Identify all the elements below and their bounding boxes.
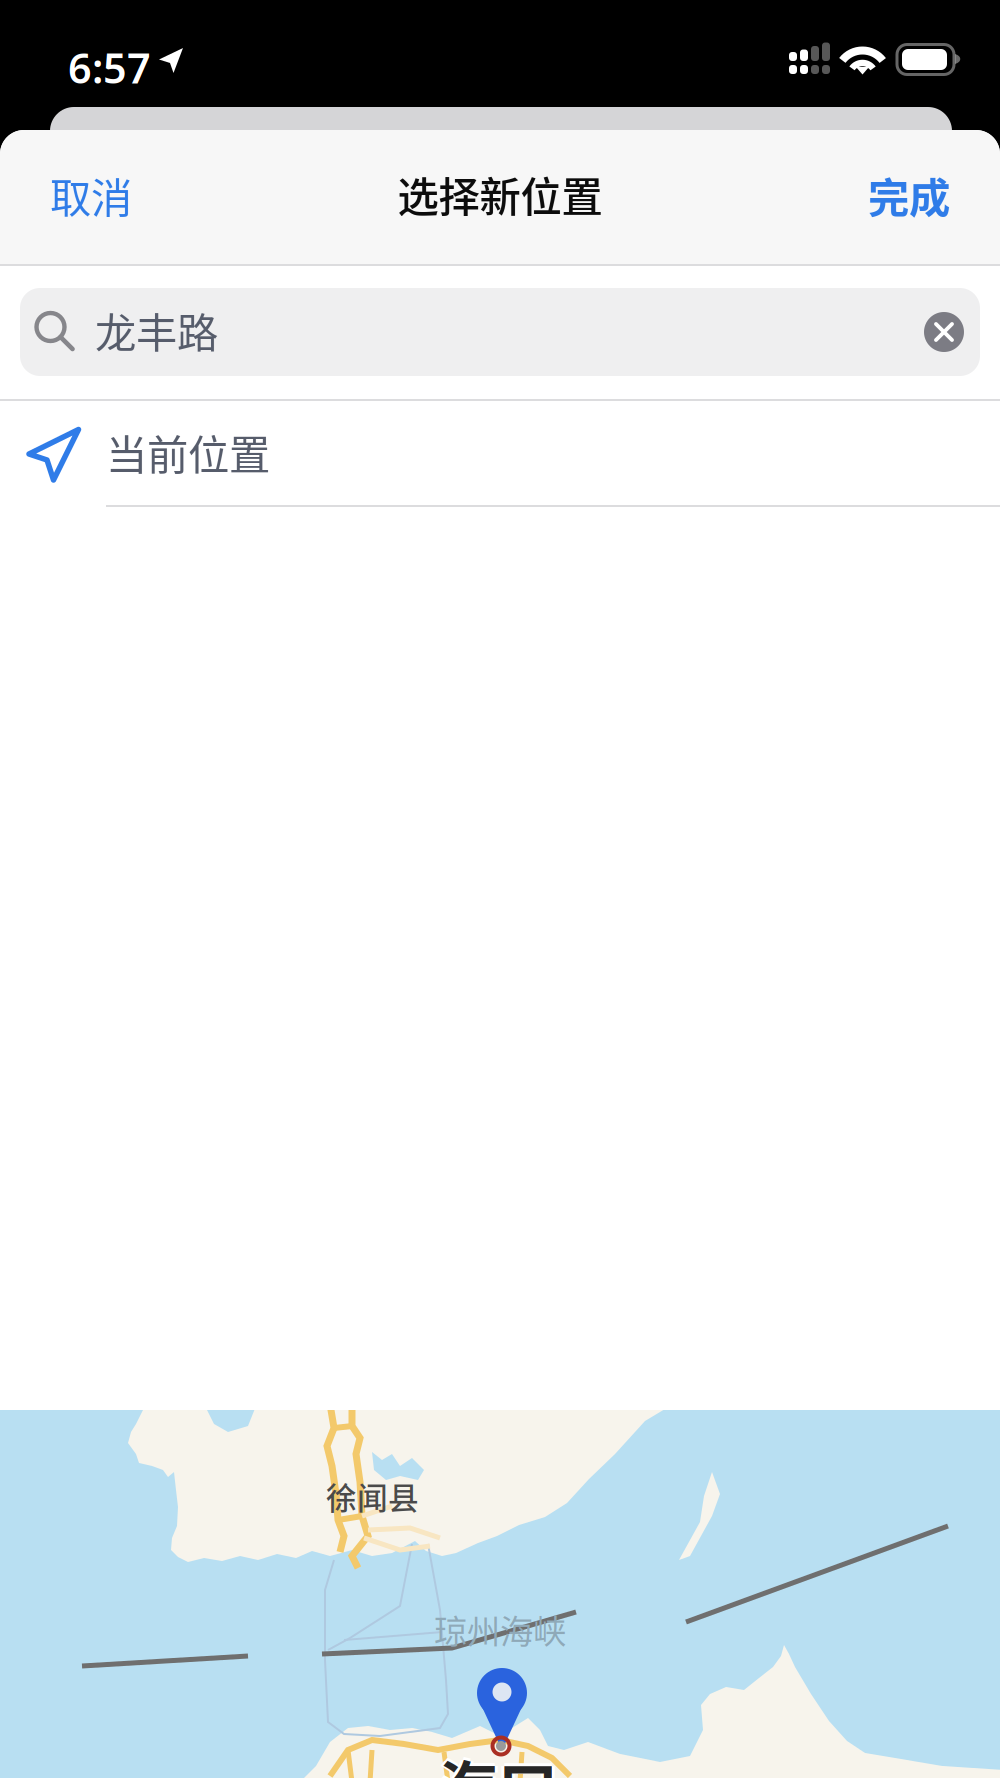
button[interactable]: 龙丰路 [20,288,980,376]
staticText: 海口 [441,1742,561,1778]
staticText: 龙丰路 [95,300,218,360]
staticText: 海口 [438,1742,558,1778]
button[interactable]: 当前位置 [0,401,1000,507]
staticText: 6:57 [68,40,151,95]
staticText: 海口 [438,1739,558,1778]
button[interactable]: 取消 [0,141,158,253]
staticText: 海口 [435,1742,555,1778]
staticText: 徐闻县 [326,1474,419,1518]
staticText: 选择新位置 [397,164,602,224]
staticText: 琼州海峡 [434,1605,566,1653]
staticText: 完成 [868,165,950,225]
button[interactable]: 完成 [842,141,1000,253]
staticText: 取消 [50,165,132,225]
staticText: 当前位置 [106,422,270,482]
